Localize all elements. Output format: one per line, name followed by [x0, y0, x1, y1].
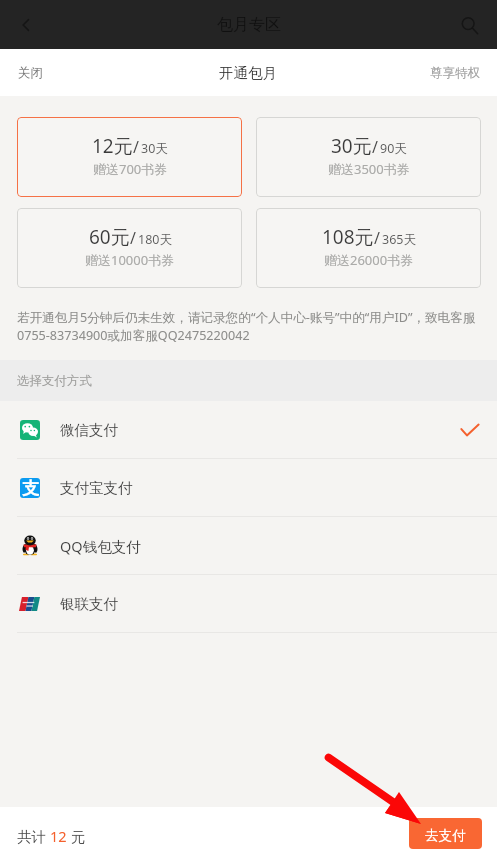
staticText: 365天 [382, 231, 416, 248]
staticText: 支付宝支付 [60, 479, 133, 497]
staticText: 12 [50, 826, 67, 846]
staticText: 共计 [17, 826, 50, 846]
staticText: 支 [22, 478, 39, 498]
staticText: 180天 [138, 231, 172, 248]
staticText: 30天 [141, 140, 168, 157]
button[interactable]: 关闭 [0, 49, 165, 96]
button[interactable]: 支 [0, 459, 497, 517]
button[interactable]: 尊享特权 [331, 49, 497, 96]
button[interactable]: 开通包月 [165, 49, 331, 96]
staticText: 12元 [92, 133, 133, 159]
staticText: 赠送700书券 [93, 160, 168, 178]
staticText: 赠送10000书券 [85, 251, 175, 269]
button[interactable]: 108元 [256, 208, 481, 288]
staticText: 赠送26000书券 [324, 251, 414, 269]
staticText: 30元 [331, 133, 372, 159]
staticText: 关闭 [18, 65, 43, 81]
staticText: 包月专区 [217, 15, 281, 35]
button[interactable]: 30元 [256, 117, 481, 197]
staticText: 元 [67, 826, 86, 846]
staticText: 银联支付 [60, 595, 118, 613]
staticText: 赠送3500书券 [328, 160, 410, 178]
staticText: 108元 [322, 224, 374, 250]
staticText: 去支付 [425, 827, 466, 844]
button[interactable]: 微信支付 [0, 401, 497, 459]
button[interactable]: 去支付 [409, 818, 482, 849]
staticText: / [130, 227, 136, 249]
staticText: 尊享特权 [430, 65, 480, 81]
staticText: / [372, 136, 378, 158]
staticText: QQ钱包支付 [60, 536, 141, 556]
staticText: 60元 [89, 224, 130, 250]
button[interactable]: QQ钱包支付 [0, 517, 497, 575]
button[interactable]: 12元 [17, 117, 242, 197]
staticText: 选择支付方式 [17, 373, 92, 389]
button[interactable]: 60元 [17, 208, 242, 288]
staticText: 微信支付 [60, 421, 118, 439]
button[interactable]: 银联支付 [0, 575, 497, 633]
staticText: / [374, 227, 380, 249]
staticText: 开通包月 [219, 64, 277, 82]
staticText: 90天 [380, 140, 407, 157]
staticText: 若开通包月5分钟后仍未生效，请记录您的“个人中心-账号”中的“用户ID”，致电客… [17, 309, 486, 344]
staticText: / [133, 136, 139, 158]
